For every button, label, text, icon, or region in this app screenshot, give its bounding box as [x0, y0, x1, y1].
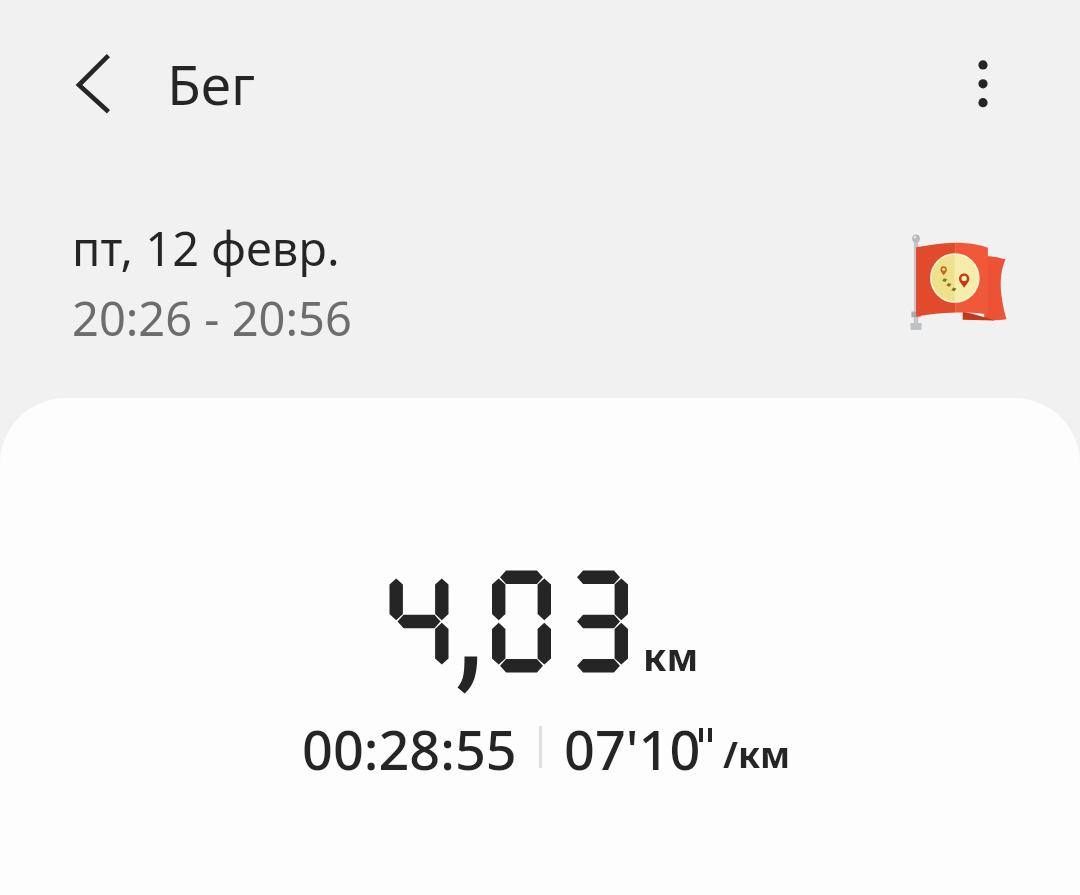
- staticText: пт, 12 февр.: [72, 216, 340, 280]
- staticText: км: [643, 630, 699, 682]
- staticText: 00:28:55: [302, 712, 517, 786]
- staticText: /км: [723, 730, 791, 779]
- staticText: 07'10: [564, 712, 701, 786]
- button[interactable]: Route map: [894, 219, 1020, 345]
- staticText: 20:26 - 20:56: [72, 286, 352, 350]
- button[interactable]: Back: [48, 40, 138, 130]
- staticText: Бег: [167, 46, 256, 121]
- button[interactable]: More options: [938, 40, 1028, 130]
